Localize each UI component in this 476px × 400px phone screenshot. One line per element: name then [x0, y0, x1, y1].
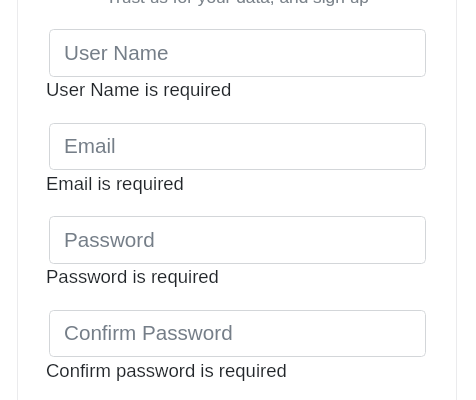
button[interactable]: Password: [49, 216, 426, 264]
button[interactable]: Email: [49, 123, 426, 170]
staticText: User Name: [64, 41, 169, 64]
staticText: Password is required: [46, 266, 219, 287]
button[interactable]: Confirm Password: [49, 310, 426, 357]
staticText: Email: [64, 134, 116, 157]
staticText: User Name is required: [46, 79, 232, 100]
staticText: Confirm password is required: [46, 360, 287, 381]
staticText: Password: [64, 228, 155, 251]
staticText: Confirm Password: [64, 321, 233, 344]
button[interactable]: User Name: [49, 29, 426, 77]
staticText: Trust us for your data, and sign up: [19, 0, 456, 6]
staticText: Email is required: [46, 173, 184, 194]
